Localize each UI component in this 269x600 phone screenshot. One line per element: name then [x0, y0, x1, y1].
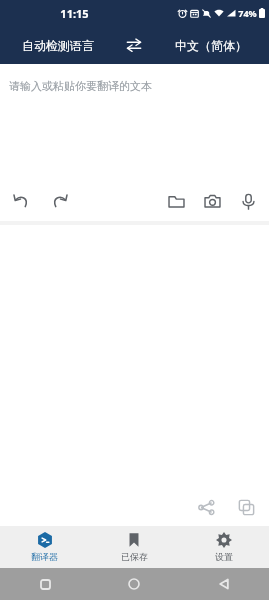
button[interactable]: 设置 — [179, 526, 269, 568]
button[interactable]: Undo — [6, 186, 36, 216]
button[interactable]: Voice input — [233, 186, 263, 216]
staticText: 11:15 — [60, 6, 89, 21]
staticText: 已保存 — [121, 551, 148, 562]
staticText: 自动检测语言 — [22, 38, 94, 53]
button[interactable]: Share — [191, 492, 221, 522]
button[interactable]: Swap languages — [115, 26, 153, 64]
button[interactable]: Redo — [44, 186, 74, 216]
staticText: 设置 — [215, 551, 233, 562]
staticText: 74% — [238, 7, 257, 19]
button[interactable]: Recents — [32, 571, 58, 597]
button[interactable]: 自动检测语言 — [0, 26, 115, 64]
button[interactable]: 中文（简体） — [153, 26, 269, 64]
button[interactable]: Back — [211, 571, 237, 597]
staticText: 请输入或粘贴你要翻译的文本 — [9, 79, 152, 93]
staticText: 翻译器 — [31, 551, 58, 562]
button[interactable]: Camera — [197, 186, 227, 216]
button[interactable]: Home — [121, 571, 147, 597]
button[interactable]: Copy — [231, 492, 261, 522]
button[interactable]: 翻译器 — [0, 526, 89, 568]
staticText: 中文（简体） — [175, 38, 247, 53]
button[interactable]: 已保存 — [89, 526, 179, 568]
button[interactable]: Open file — [161, 186, 191, 216]
